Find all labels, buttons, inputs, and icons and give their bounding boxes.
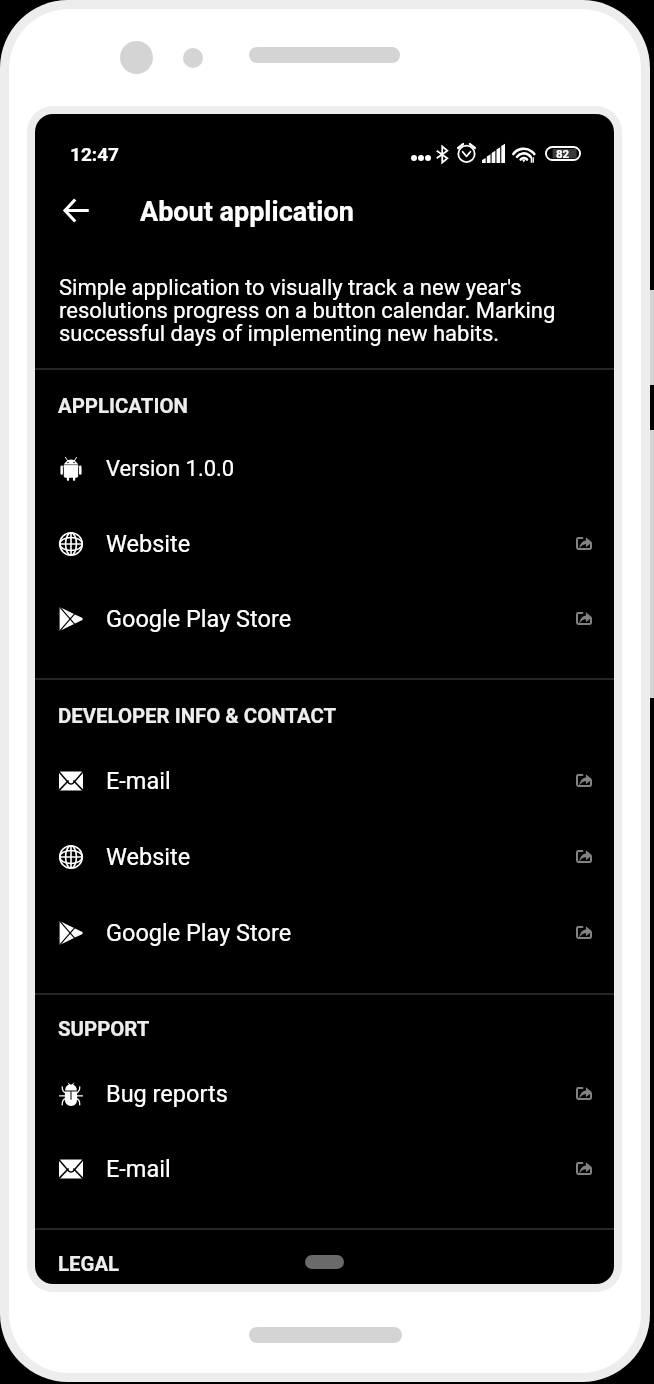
staticText: E-mail xyxy=(106,767,171,795)
button[interactable]: E-mail xyxy=(35,1131,614,1206)
button[interactable]: Google Play Store xyxy=(35,895,614,970)
staticText: Simple application to visually track a n… xyxy=(59,277,574,346)
staticText: SUPPORT xyxy=(58,1017,150,1041)
staticText: Google Play Store xyxy=(106,919,292,947)
staticText: Google Play Store xyxy=(106,605,292,633)
staticText: Version 1.0.0 xyxy=(106,456,235,482)
staticText: 12:47 xyxy=(70,143,119,165)
button[interactable]: Version 1.0.0 xyxy=(35,431,614,506)
staticText: E-mail xyxy=(106,1155,171,1183)
button[interactable]: Back xyxy=(48,182,104,238)
button[interactable]: Bug reports xyxy=(35,1056,614,1131)
button[interactable]: E-mail xyxy=(35,743,614,818)
staticText: Bug reports xyxy=(106,1080,228,1108)
staticText: APPLICATION xyxy=(58,394,188,418)
button[interactable]: Google Play Store xyxy=(35,581,614,656)
staticText: Website xyxy=(106,843,191,871)
staticText: LEGAL xyxy=(58,1252,120,1276)
staticText: DEVELOPER INFO & CONTACT xyxy=(58,704,337,728)
staticText: Website xyxy=(106,530,191,558)
button[interactable]: Website xyxy=(35,819,614,894)
button[interactable]: Website xyxy=(35,506,614,581)
staticText: About application xyxy=(140,196,354,228)
staticText: 82 xyxy=(556,147,570,160)
